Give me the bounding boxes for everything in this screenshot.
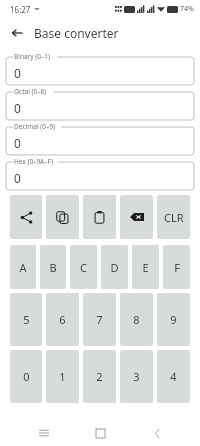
button[interactable]: E xyxy=(132,245,159,289)
button[interactable]: D xyxy=(101,245,128,289)
button[interactable]: 9 xyxy=(157,293,190,346)
button[interactable]: C xyxy=(70,245,97,289)
staticText: 0 xyxy=(14,135,21,151)
staticText: 3 xyxy=(133,369,140,384)
button[interactable]: Share xyxy=(10,195,42,239)
staticText: 0 xyxy=(14,170,21,186)
staticText: CLR xyxy=(164,210,184,225)
staticText: Hex (0–9A–F) xyxy=(14,157,53,166)
staticText: F xyxy=(174,260,180,275)
staticText: Base converter xyxy=(34,25,119,41)
staticText: 16:27 xyxy=(10,4,31,15)
button[interactable]: F xyxy=(163,245,190,289)
staticText: 8 xyxy=(133,312,140,327)
staticText: 9 xyxy=(170,312,177,327)
staticText: B xyxy=(49,260,57,275)
staticText: 0 xyxy=(14,100,21,116)
button[interactable]: CLR xyxy=(157,195,190,239)
staticText: 6 xyxy=(59,312,66,327)
button[interactable]: Copy xyxy=(46,195,79,239)
button[interactable]: Backspace xyxy=(120,195,153,239)
button[interactable]: 0 xyxy=(10,350,42,403)
button[interactable]: 7 xyxy=(83,293,116,346)
button[interactable]: 6 xyxy=(46,293,79,346)
button[interactable]: Octal (0–8) xyxy=(6,87,194,120)
button[interactable]: 1 xyxy=(46,350,79,403)
staticText: Decimal (0–9) xyxy=(14,122,55,131)
staticText: 4 xyxy=(170,369,177,384)
staticText: Octal (0–8) xyxy=(14,87,47,96)
button[interactable]: 8 xyxy=(120,293,153,346)
button[interactable]: Paste xyxy=(83,195,116,239)
button[interactable]: Recents xyxy=(31,420,57,446)
button[interactable]: Decimal (0–9) xyxy=(6,122,194,155)
staticText: C xyxy=(80,260,87,275)
button[interactable]: Back xyxy=(6,22,28,44)
staticText: E xyxy=(142,260,149,275)
button[interactable]: B xyxy=(40,245,66,289)
button[interactable]: Back xyxy=(144,420,170,446)
button[interactable]: Binary (0–1) xyxy=(6,52,194,85)
button[interactable]: 3 xyxy=(120,350,153,403)
staticText: 2 xyxy=(96,369,103,384)
button[interactable]: 5 xyxy=(10,293,42,346)
button[interactable]: Hex (0–9A–F) xyxy=(6,157,194,190)
staticText: 74% xyxy=(180,4,194,14)
staticText: 0 xyxy=(23,369,30,384)
staticText: 5 xyxy=(23,312,30,327)
staticText: 7 xyxy=(96,312,103,327)
staticText: A xyxy=(19,260,27,275)
staticText: 0 xyxy=(14,65,21,81)
staticText: 1 xyxy=(59,369,66,384)
button[interactable]: 4 xyxy=(157,350,190,403)
staticText: Binary (0–1) xyxy=(14,52,50,61)
staticText: D xyxy=(110,260,119,275)
button[interactable]: 2 xyxy=(83,350,116,403)
button[interactable]: A xyxy=(10,245,36,289)
button[interactable]: Home xyxy=(87,420,113,446)
